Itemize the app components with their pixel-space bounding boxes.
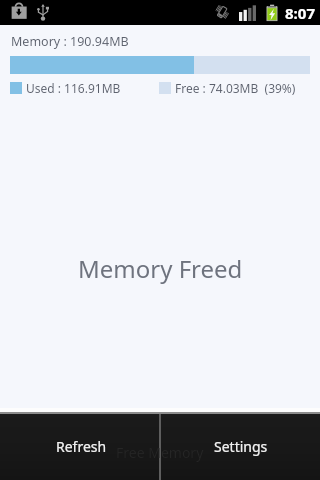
staticText: 8:07	[285, 3, 315, 23]
other: Download complete	[11, 3, 27, 19]
staticText: Free : 74.03MB (39%)	[175, 80, 296, 96]
staticText: Memory Freed	[78, 252, 243, 285]
staticText: Used : 116.91MB	[26, 80, 121, 96]
staticText: Settings	[214, 437, 268, 456]
button[interactable]: Settings	[161, 414, 320, 480]
staticText: Free Memory	[116, 443, 204, 462]
other: Memory usage 61 percent used	[10, 56, 310, 74]
other: Auto rotate	[212, 2, 232, 22]
staticText: Memory : 190.94MB	[11, 33, 129, 50]
staticText: Refresh	[56, 437, 107, 456]
button[interactable]: Refresh	[0, 414, 159, 480]
other: Signal strength	[239, 5, 256, 21]
other: USB connected	[37, 4, 49, 21]
other: Battery charging	[266, 4, 278, 21]
